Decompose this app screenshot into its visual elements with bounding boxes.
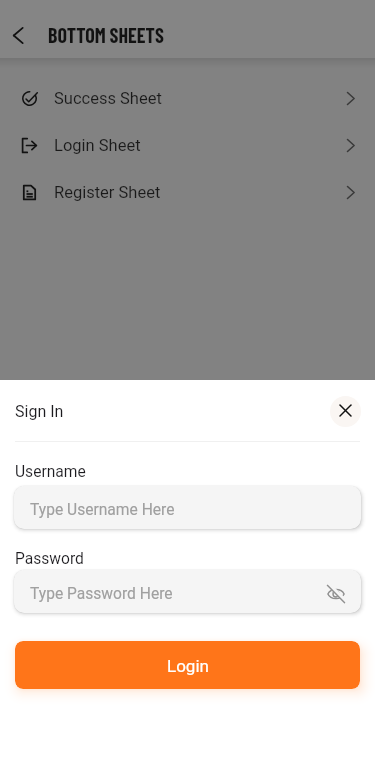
staticText: Type Username Here: [30, 501, 175, 519]
button[interactable]: Success Sheet: [0, 75, 375, 122]
staticText: Username: [15, 463, 86, 481]
button[interactable]: Type Password Here: [14, 570, 361, 613]
button[interactable]: Register Sheet: [0, 169, 375, 216]
staticText: Register Sheet: [54, 183, 161, 202]
staticText: Type Password Here: [30, 585, 173, 603]
staticText: BOTTOM SHEETS: [48, 23, 164, 47]
button[interactable]: Back: [1, 18, 35, 52]
staticText: Sign In: [15, 402, 64, 421]
button[interactable]: Login: [15, 641, 360, 689]
staticText: Login Sheet: [54, 136, 141, 155]
button[interactable]: Show password: [323, 581, 349, 607]
button[interactable]: Login Sheet: [0, 122, 375, 169]
staticText: Password: [15, 550, 84, 568]
button[interactable]: Close: [330, 396, 361, 427]
staticText: Login: [167, 656, 209, 676]
staticText: Success Sheet: [54, 89, 162, 108]
button[interactable]: Type Username Here: [14, 486, 361, 529]
